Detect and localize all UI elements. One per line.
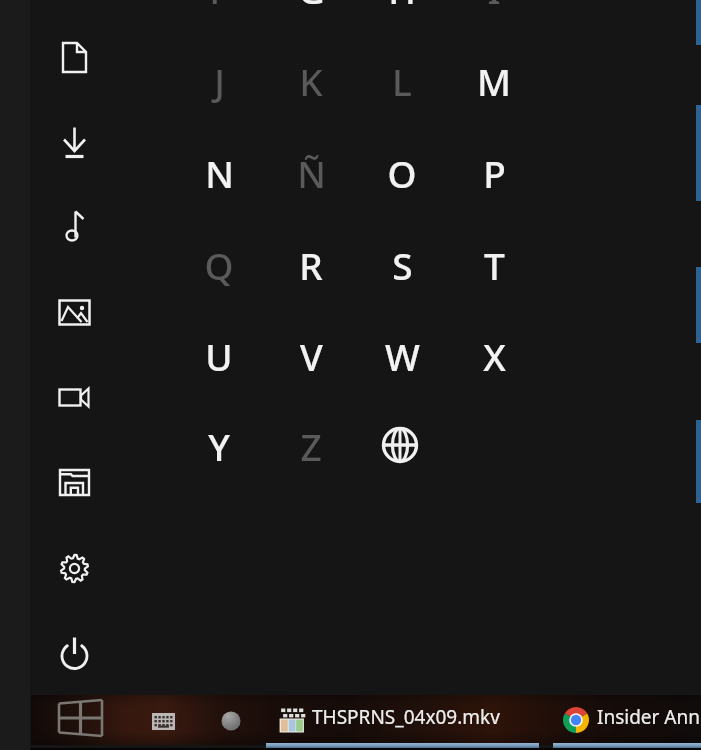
staticText: H xyxy=(388,0,416,14)
staticText: Ñ xyxy=(297,148,326,198)
staticText: Insider Ann xyxy=(597,704,700,730)
button[interactable]: Music xyxy=(32,185,117,270)
staticText: Z xyxy=(300,421,322,471)
staticText: L xyxy=(392,56,412,106)
button[interactable]: M xyxy=(450,37,538,125)
button[interactable]: J xyxy=(175,37,263,125)
button[interactable]: N xyxy=(175,129,263,217)
staticText: M xyxy=(477,56,511,106)
button[interactable]: Power xyxy=(32,612,117,697)
staticText: F xyxy=(209,0,229,14)
staticText: K xyxy=(299,56,323,106)
button[interactable]: R xyxy=(267,221,355,309)
button[interactable]: File explorer xyxy=(32,440,117,525)
staticText: J xyxy=(214,56,225,106)
button[interactable]: Other xyxy=(356,401,444,489)
button[interactable]: K xyxy=(267,37,355,125)
staticText: V xyxy=(300,331,323,381)
button[interactable]: Settings xyxy=(32,526,117,611)
button[interactable]: T xyxy=(450,221,538,309)
button[interactable]: V xyxy=(267,312,355,400)
button[interactable]: Videos xyxy=(32,355,117,440)
staticText: P xyxy=(483,148,506,198)
button[interactable]: Ñ xyxy=(267,129,355,217)
button[interactable]: X xyxy=(450,312,538,400)
button[interactable]: Z xyxy=(267,402,355,490)
button[interactable]: Pictures xyxy=(32,270,117,355)
button[interactable]: U xyxy=(175,312,263,400)
staticText: S xyxy=(392,240,413,290)
button[interactable]: S xyxy=(358,221,446,309)
staticText: Q xyxy=(204,240,234,290)
button[interactable]: G xyxy=(267,0,355,33)
staticText: THSPRNS_04x09.mkv xyxy=(312,704,500,730)
staticText: W xyxy=(385,331,420,381)
staticText: O xyxy=(387,148,417,198)
staticText: U xyxy=(205,331,233,381)
button[interactable]: Downloads xyxy=(32,100,117,185)
button[interactable]: W xyxy=(358,312,446,400)
staticText: G xyxy=(298,0,325,14)
staticText: T xyxy=(484,240,505,290)
button[interactable]: F xyxy=(175,0,263,33)
button[interactable]: I xyxy=(450,0,538,33)
button[interactable]: P xyxy=(450,129,538,217)
button[interactable]: Y xyxy=(175,402,263,490)
button[interactable]: Documents xyxy=(32,15,117,100)
button[interactable]: H xyxy=(358,0,446,33)
staticText: Y xyxy=(208,421,230,471)
button[interactable]: O xyxy=(358,129,446,217)
button[interactable]: L xyxy=(358,37,446,125)
staticText: R xyxy=(299,240,323,290)
staticText: I xyxy=(487,0,501,14)
staticText: X xyxy=(483,331,506,381)
staticText: N xyxy=(205,148,234,198)
button[interactable]: Q xyxy=(175,221,263,309)
